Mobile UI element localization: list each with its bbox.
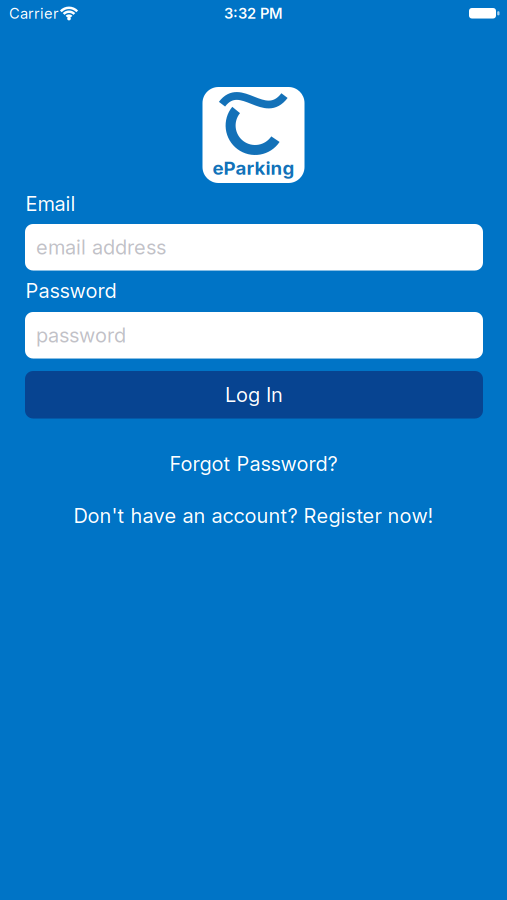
button[interactable]: Log In <box>25 371 483 418</box>
staticText: Password <box>25 279 116 303</box>
button[interactable]: password <box>25 312 483 358</box>
button[interactable]: Don't have an account? Register now! <box>73 504 433 528</box>
staticText: Log In <box>225 383 283 407</box>
staticText: Don't have an account? Register now! <box>73 504 433 528</box>
staticText: Forgot Password? <box>169 452 337 476</box>
staticText: Email <box>25 192 75 216</box>
button[interactable]: email address <box>25 224 483 270</box>
staticText: password <box>36 323 126 347</box>
staticText: Carrier <box>9 5 59 22</box>
staticText: eParking <box>212 157 294 179</box>
staticText: 3:32 PM <box>224 5 283 22</box>
staticText: email address <box>36 235 166 259</box>
button[interactable]: Forgot Password? <box>169 452 337 476</box>
